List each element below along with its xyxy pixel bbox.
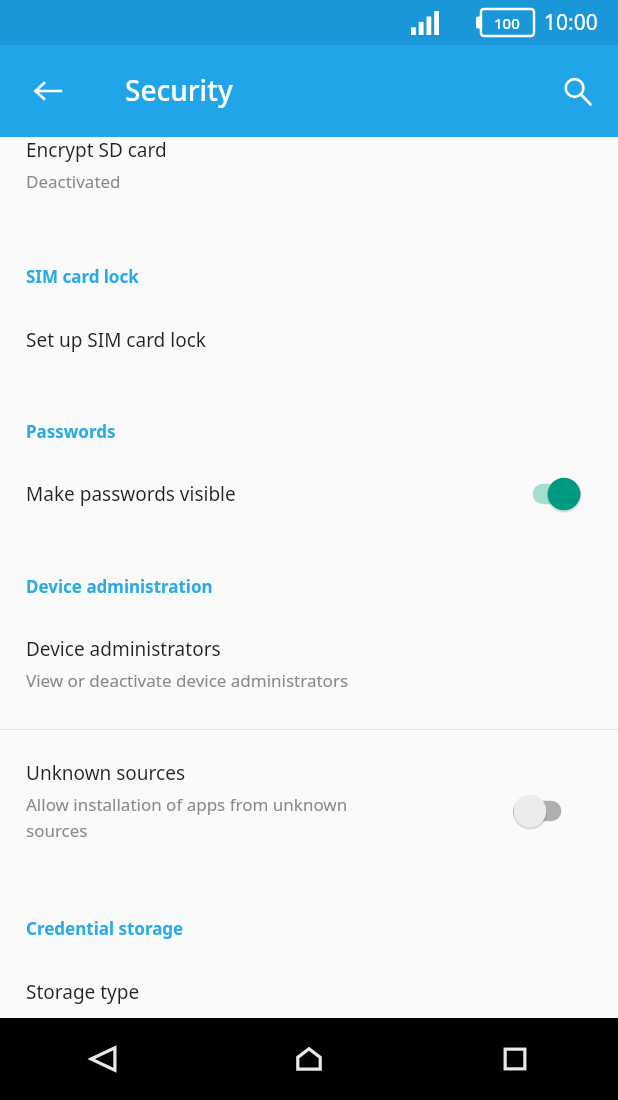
- staticText: Device administration: [26, 575, 213, 598]
- button[interactable]: Recent apps: [412, 1018, 618, 1100]
- button[interactable]: Encrypt SD card: [0, 137, 618, 215]
- button[interactable]: Search: [547, 61, 607, 121]
- button[interactable]: [519, 477, 581, 511]
- button[interactable]: Set up SIM card lock: [0, 309, 618, 371]
- button[interactable]: Unknown sources: [0, 742, 618, 862]
- staticText: Encrypt SD card: [26, 137, 167, 163]
- staticText: Deactivated: [26, 170, 121, 193]
- staticText: Credential storage: [26, 917, 184, 940]
- staticText: View or deactivate device administrators: [26, 669, 349, 692]
- staticText: Make passwords visible: [26, 481, 236, 507]
- button[interactable]: Storage type: [0, 961, 618, 1018]
- staticText: Device administrators: [26, 636, 221, 662]
- staticText: SIM card lock: [26, 265, 139, 288]
- button[interactable]: Home: [206, 1018, 412, 1100]
- staticText: Security: [125, 71, 233, 109]
- staticText: Storage type: [26, 979, 140, 1005]
- staticText: 10:00: [544, 8, 598, 37]
- staticText: Allow installation of apps from unknown …: [26, 793, 348, 842]
- button[interactable]: Make passwords visible: [0, 463, 618, 525]
- staticText: Passwords: [26, 420, 116, 443]
- staticText: 100: [494, 13, 520, 33]
- staticText: Unknown sources: [26, 760, 185, 786]
- staticText: Set up SIM card lock: [26, 327, 206, 353]
- button[interactable]: Back: [0, 1018, 206, 1100]
- button[interactable]: Device administrators: [0, 619, 618, 707]
- button[interactable]: [513, 794, 575, 828]
- button[interactable]: Back: [18, 61, 78, 121]
